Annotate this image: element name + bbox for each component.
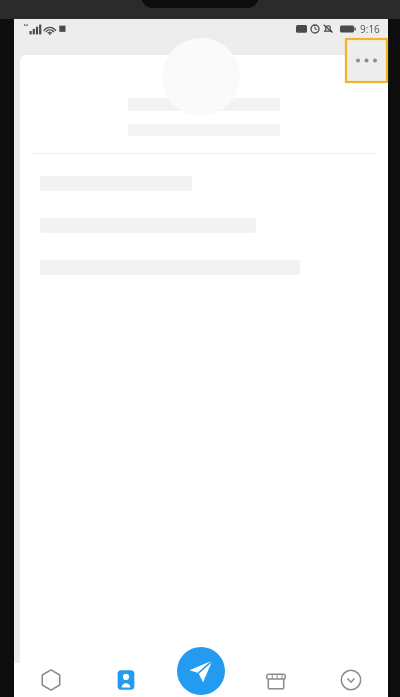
button[interactable]: Home bbox=[14, 663, 88, 697]
button[interactable]: More options bbox=[345, 38, 388, 83]
button[interactable]: Contacts bbox=[88, 663, 163, 697]
button[interactable]: Send bbox=[163, 663, 238, 697]
staticText: 9:16 bbox=[360, 22, 380, 36]
button[interactable]: Store bbox=[238, 663, 313, 697]
button[interactable]: Profile bbox=[313, 663, 388, 697]
button[interactable]: Send bbox=[177, 647, 225, 695]
